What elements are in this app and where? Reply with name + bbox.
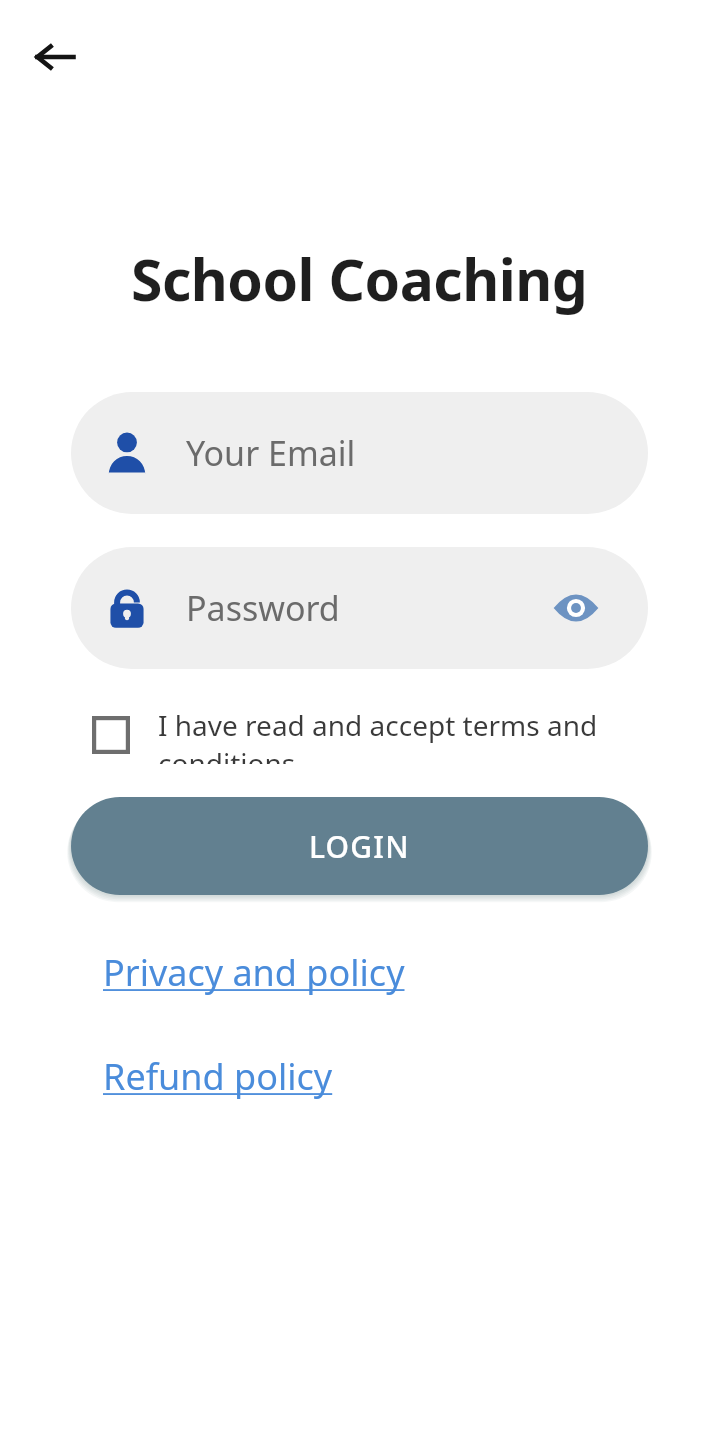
button[interactable]: Refund policy xyxy=(103,1052,333,1101)
button[interactable]: I have read and accept terms and conditi… xyxy=(92,706,647,764)
button[interactable]: Show password xyxy=(548,580,604,636)
button[interactable]: LOGIN xyxy=(71,797,648,895)
staticText: Your Email xyxy=(186,430,356,476)
staticText: Privacy and policy xyxy=(103,948,405,997)
button[interactable]: Privacy and policy xyxy=(103,948,405,997)
button[interactable]: Password xyxy=(71,547,648,669)
staticText: School Coaching xyxy=(131,240,588,318)
staticText: LOGIN xyxy=(309,826,410,867)
button[interactable]: Your Email xyxy=(71,392,648,514)
staticText: Refund policy xyxy=(103,1052,333,1101)
button[interactable]: Back xyxy=(20,22,90,92)
staticText: Password xyxy=(186,585,340,631)
staticText: I have read and accept terms and conditi… xyxy=(158,706,647,764)
